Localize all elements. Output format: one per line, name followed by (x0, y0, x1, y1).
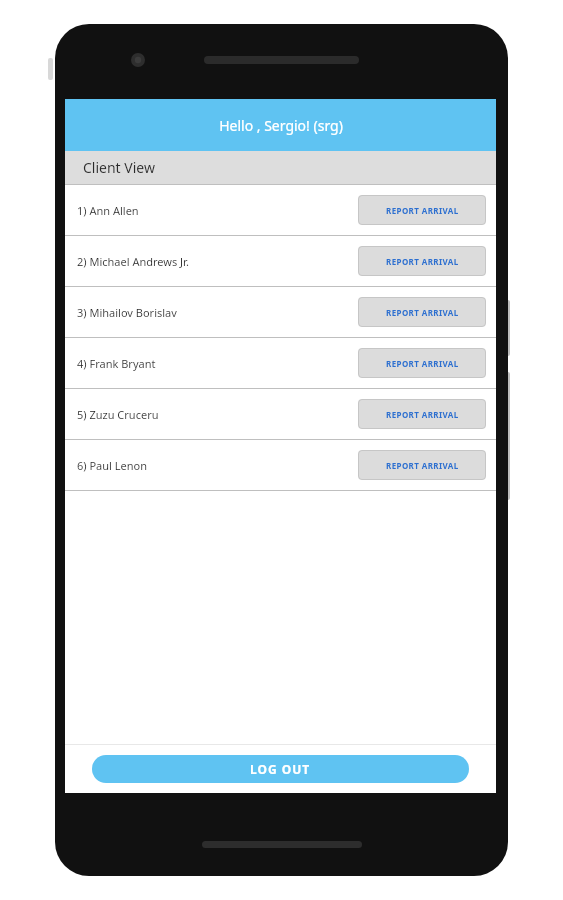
staticText: 5) Zuzu Cruceru (77, 407, 358, 422)
staticText: REPORT ARRIVAL (386, 460, 459, 471)
button[interactable]: 6) Paul Lenon (65, 440, 496, 490)
button[interactable]: REPORT ARRIVAL (358, 348, 486, 378)
staticText: 4) Frank Bryant (77, 356, 358, 371)
staticText: 6) Paul Lenon (77, 458, 358, 473)
staticText: LOG OUT (250, 761, 311, 777)
button[interactable]: 3) Mihailov Borislav (65, 287, 496, 337)
staticText: REPORT ARRIVAL (386, 409, 459, 420)
button[interactable]: 2) Michael Andrews Jr. (65, 236, 496, 286)
button[interactable]: LOG OUT (92, 755, 469, 783)
staticText: 1) Ann Allen (77, 203, 358, 218)
staticText: REPORT ARRIVAL (386, 307, 459, 318)
button[interactable]: REPORT ARRIVAL (358, 246, 486, 276)
staticText: Hello , Sergio! (srg) (219, 116, 343, 135)
staticText: REPORT ARRIVAL (386, 205, 459, 216)
staticText: 3) Mihailov Borislav (77, 305, 358, 320)
button[interactable]: REPORT ARRIVAL (358, 195, 486, 225)
button[interactable]: REPORT ARRIVAL (358, 297, 486, 327)
staticText: REPORT ARRIVAL (386, 358, 459, 369)
button[interactable]: 4) Frank Bryant (65, 338, 496, 388)
button[interactable]: 1) Ann Allen (65, 185, 496, 235)
staticText: REPORT ARRIVAL (386, 256, 459, 267)
button[interactable]: REPORT ARRIVAL (358, 450, 486, 480)
button[interactable]: 5) Zuzu Cruceru (65, 389, 496, 439)
staticText: 2) Michael Andrews Jr. (77, 254, 358, 269)
staticText: Client View (83, 158, 155, 177)
button[interactable]: REPORT ARRIVAL (358, 399, 486, 429)
